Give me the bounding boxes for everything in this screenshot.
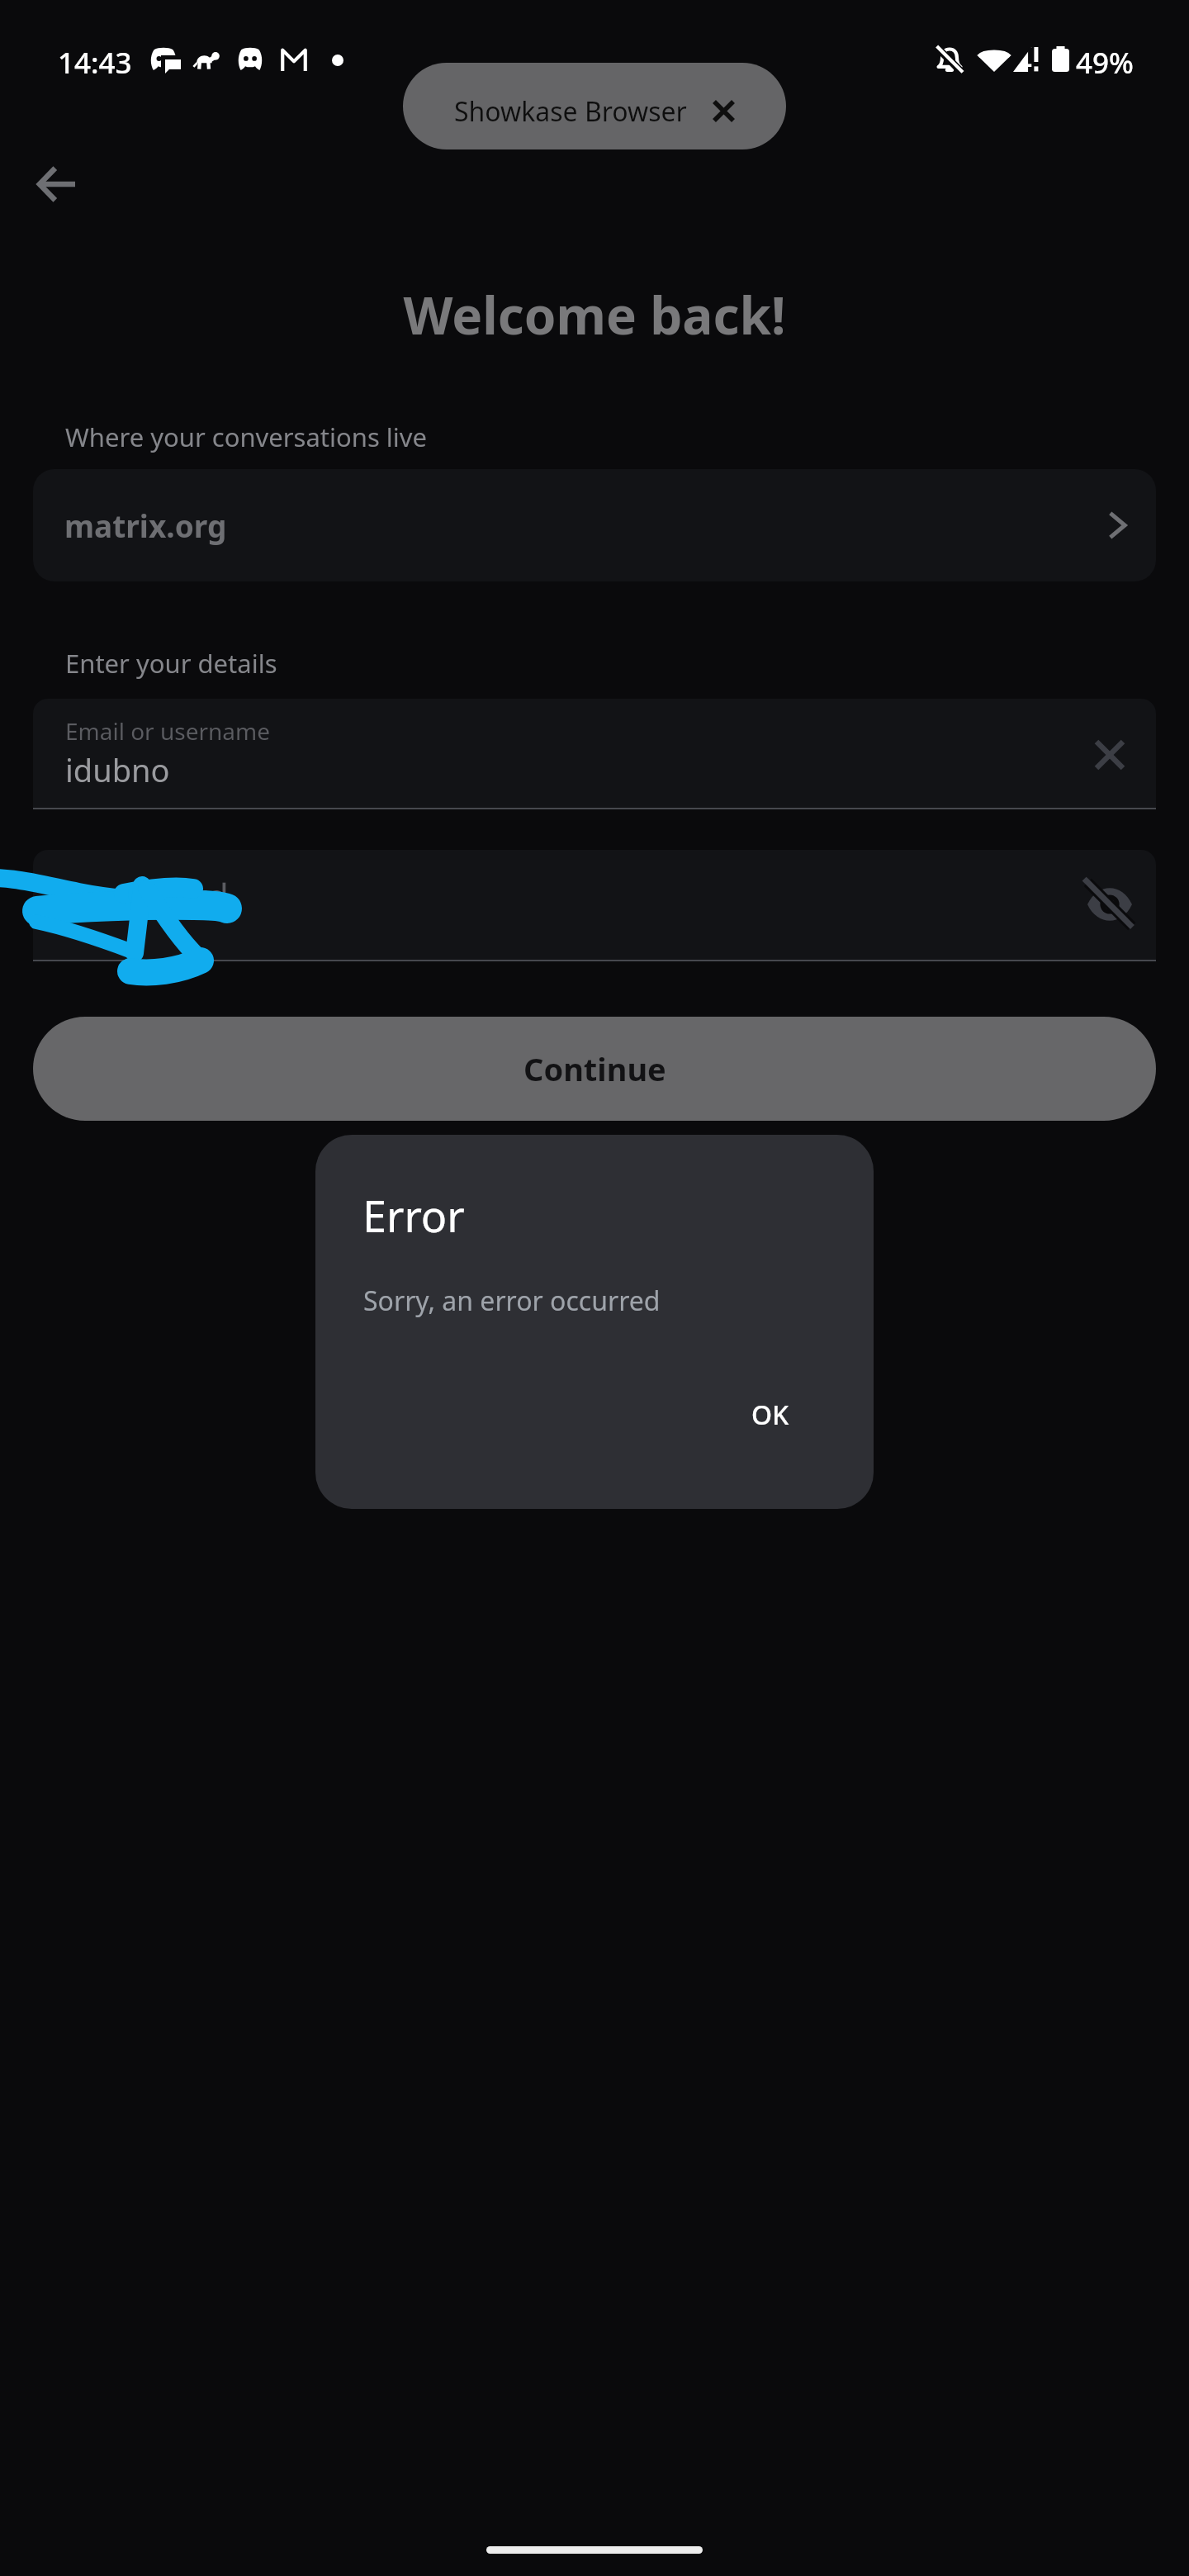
staticText: Password	[64, 871, 230, 921]
button[interactable]: Show password	[1077, 871, 1143, 937]
staticText: Error	[362, 1186, 465, 1245]
button[interactable]: Showkase Browser	[403, 63, 786, 149]
button[interactable]: Password	[33, 850, 1156, 960]
button[interactable]: OK	[737, 1385, 804, 1445]
staticText: Sorry, an error occurred	[363, 1283, 661, 1319]
button[interactable]: matrix.org	[33, 469, 1156, 581]
staticText: Enter your details	[65, 646, 277, 681]
staticText: Welcome back!	[0, 280, 1189, 349]
button[interactable]: Email or username	[33, 699, 1156, 808]
staticText: idubno	[65, 748, 170, 791]
staticText: Email or username	[65, 715, 271, 747]
button[interactable]: Back	[22, 149, 92, 219]
button[interactable]: Clear text	[1077, 722, 1143, 788]
button[interactable]: Continue	[33, 1017, 1156, 1121]
staticText: Continue	[523, 1047, 666, 1090]
staticText: Showkase Browser	[454, 93, 687, 130]
staticText: 14:43	[58, 43, 132, 83]
staticText: OK	[751, 1397, 789, 1433]
staticText: matrix.org	[64, 505, 227, 546]
staticText: 49%	[1076, 43, 1134, 83]
staticText: Where your conversations live	[65, 420, 428, 454]
